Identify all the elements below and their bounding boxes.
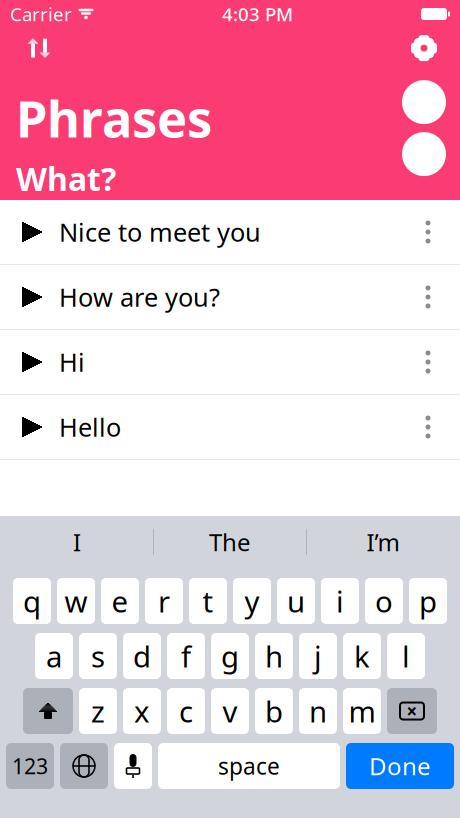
staticText: g <box>221 636 239 675</box>
button[interactable]: Speak <box>402 132 446 176</box>
button[interactable]: h <box>255 633 293 679</box>
staticText: r <box>158 581 170 620</box>
button[interactable]: c <box>167 688 205 734</box>
button[interactable]: How are you? <box>0 265 460 329</box>
staticText: I <box>73 526 81 558</box>
button[interactable]: space <box>158 743 340 789</box>
button[interactable]: x <box>123 688 161 734</box>
button[interactable]: Hello <box>0 395 460 459</box>
staticText: v <box>222 691 237 730</box>
button[interactable]: 123 <box>6 743 54 789</box>
button[interactable]: w <box>57 578 95 624</box>
staticText: l <box>402 636 410 675</box>
staticText: w <box>64 581 87 620</box>
button[interactable]: m <box>343 688 381 734</box>
staticText: h <box>265 636 283 675</box>
staticText: Phrases <box>16 84 212 151</box>
button[interactable]: v <box>211 688 249 734</box>
button[interactable]: f <box>167 633 205 679</box>
staticText: e <box>111 581 128 620</box>
button[interactable]: g <box>211 633 249 679</box>
button[interactable]: r <box>145 578 183 624</box>
button[interactable]: Hi <box>0 330 460 394</box>
staticText: c <box>179 691 193 730</box>
button[interactable]: o <box>365 578 403 624</box>
staticText: s <box>91 636 105 675</box>
button[interactable]: I’m <box>307 516 459 568</box>
button[interactable]: u <box>277 578 315 624</box>
staticText: z <box>91 691 105 730</box>
button[interactable]: p <box>409 578 447 624</box>
button[interactable]: t <box>189 578 227 624</box>
staticText: n <box>309 691 327 730</box>
button[interactable]: d <box>123 633 161 679</box>
staticText: m <box>348 691 375 730</box>
staticText: f <box>181 636 191 675</box>
button[interactable]: Shift <box>23 688 73 734</box>
button[interactable]: s <box>79 633 117 679</box>
staticText: o <box>375 581 393 620</box>
button[interactable]: Settings <box>402 28 446 68</box>
staticText: Hi <box>59 345 85 379</box>
staticText: u <box>287 581 305 620</box>
staticText: Nice to meet you <box>59 215 261 249</box>
button[interactable]: b <box>255 688 293 734</box>
staticText: Carrier <box>10 2 72 26</box>
button[interactable]: z <box>79 688 117 734</box>
staticText: k <box>354 636 370 675</box>
staticText: a <box>46 636 62 675</box>
staticText: y <box>244 581 259 620</box>
button[interactable]: y <box>233 578 271 624</box>
button[interactable]: Done <box>346 743 454 789</box>
staticText: d <box>133 636 151 675</box>
staticText: i <box>336 581 344 620</box>
button[interactable]: Delete <box>387 688 437 734</box>
button[interactable]: a <box>35 633 73 679</box>
button[interactable]: Swap languages <box>16 28 62 68</box>
staticText: 123 <box>12 752 48 780</box>
staticText: p <box>419 581 437 620</box>
button[interactable]: l <box>387 633 425 679</box>
staticText: t <box>202 581 213 620</box>
staticText: How are you? <box>59 280 220 314</box>
staticText: Hello <box>59 410 121 444</box>
staticText: 4:03 PM <box>222 2 293 26</box>
button[interactable]: I <box>1 516 153 568</box>
staticText: × <box>406 699 417 723</box>
button[interactable]: Nice to meet you <box>0 200 460 264</box>
button[interactable]: Dictation <box>114 743 152 789</box>
staticText: b <box>265 691 283 730</box>
button[interactable]: e <box>101 578 139 624</box>
button[interactable]: n <box>299 688 337 734</box>
button[interactable]: The <box>154 516 306 568</box>
button[interactable]: k <box>343 633 381 679</box>
button[interactable]: j <box>299 633 337 679</box>
staticText: q <box>23 581 41 620</box>
button[interactable]: i <box>321 578 359 624</box>
staticText: x <box>134 691 150 730</box>
staticText: I’m <box>366 526 399 558</box>
button[interactable]: Add phrase <box>402 80 446 124</box>
button[interactable]: Next keyboard <box>60 743 108 789</box>
button[interactable]: q <box>13 578 51 624</box>
staticText: space <box>218 751 280 781</box>
staticText: j <box>314 636 322 675</box>
staticText: What? <box>16 157 116 200</box>
staticText: The <box>209 526 251 558</box>
staticText: Done <box>369 750 431 782</box>
